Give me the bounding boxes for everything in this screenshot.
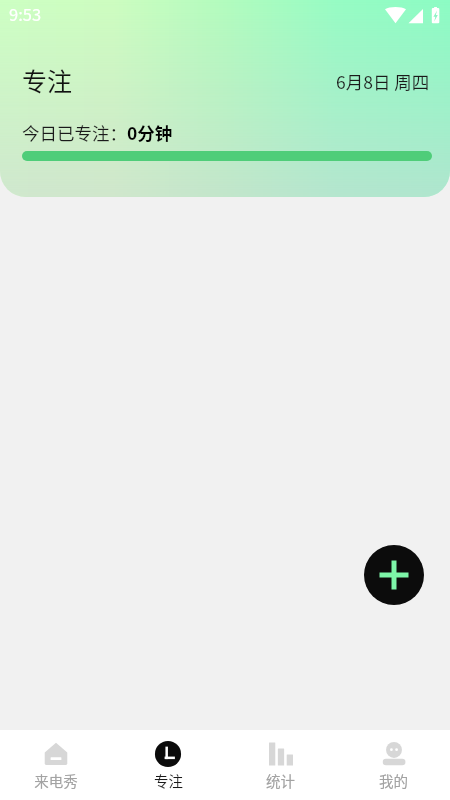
button[interactable]: 专注 xyxy=(112,730,224,800)
staticText: 专注 xyxy=(22,62,73,98)
button[interactable]: 我的 xyxy=(337,730,450,800)
staticText: 我的 xyxy=(379,770,408,791)
staticText: 统计 xyxy=(266,770,295,791)
button[interactable]: Add focus session xyxy=(364,545,424,605)
staticText: 9:53 xyxy=(9,2,42,26)
staticText: 今日已专注： xyxy=(22,120,127,145)
staticText: 专注 xyxy=(154,770,183,791)
staticText: 0分钟 xyxy=(127,120,173,145)
staticText: 来电秀 xyxy=(34,770,78,791)
button[interactable]: 来电秀 xyxy=(0,730,112,800)
button[interactable]: 统计 xyxy=(224,730,337,800)
staticText: 6月8日 周四 xyxy=(336,69,430,94)
